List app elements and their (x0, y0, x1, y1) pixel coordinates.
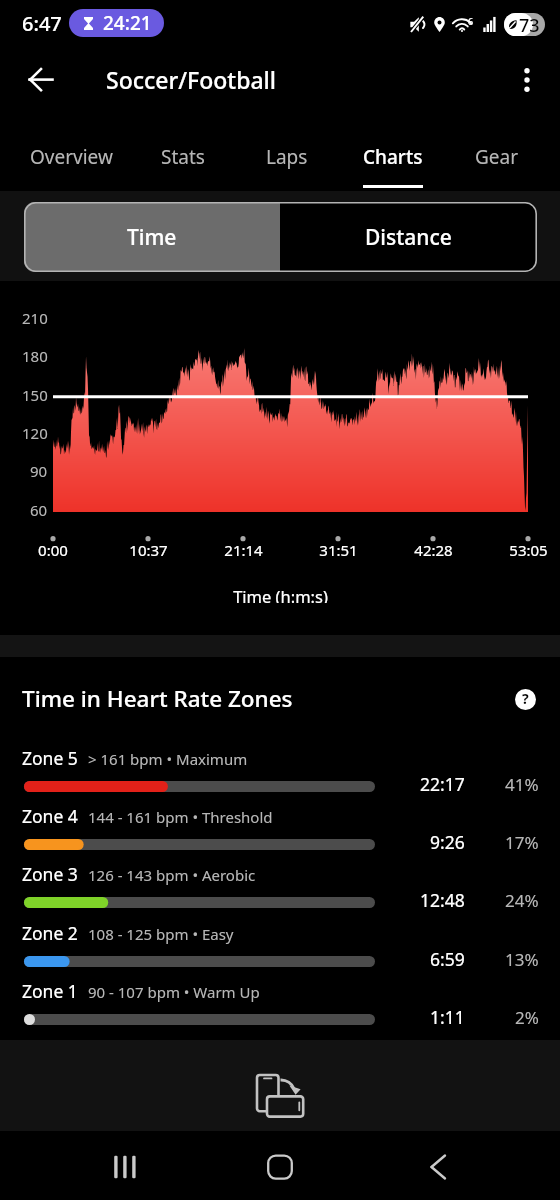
staticText: 17% (505, 831, 539, 851)
staticText: 60 (30, 500, 48, 520)
button[interactable]: Back (414, 1143, 462, 1191)
staticText: Gear (475, 144, 519, 170)
button[interactable]: Zone 1 (0, 978, 560, 1036)
staticText: Stats (161, 144, 205, 170)
button[interactable]: Zone 3 (0, 861, 560, 919)
button[interactable]: Stats (139, 112, 227, 190)
staticText: Zone 3 (22, 862, 78, 886)
staticText: 0:00 (38, 540, 68, 556)
staticText: 42:28 (414, 540, 453, 556)
staticText: Time (127, 223, 177, 252)
button[interactable]: Time (24, 202, 280, 272)
staticText: 144 - 161 bpm • Threshold (88, 807, 273, 827)
staticText: 73 (519, 13, 540, 36)
staticText: 22:17 (420, 772, 465, 793)
staticText: 1:11 (430, 1005, 465, 1026)
staticText: 53:05 (509, 540, 548, 556)
button[interactable]: More options (503, 56, 551, 104)
staticText: Time in Heart Rate Zones (22, 683, 293, 714)
staticText: Zone 1 (22, 979, 78, 1003)
staticText: 6:47 (22, 10, 62, 37)
staticText: 2% (515, 1006, 539, 1026)
staticText: 10:37 (129, 540, 168, 556)
staticText: 41% (505, 773, 539, 793)
button[interactable]: Back (17, 56, 65, 104)
staticText: 12:48 (420, 888, 465, 909)
button[interactable]: Laps (243, 112, 331, 190)
staticText: 210 (22, 308, 48, 328)
staticText: 120 (22, 423, 48, 443)
button[interactable]: Home (256, 1143, 304, 1191)
staticText: ? (522, 689, 529, 708)
button[interactable]: Zone 4 (0, 803, 560, 861)
button[interactable]: Rotate screen (251, 1070, 307, 1126)
staticText: 90 - 107 bpm • Warm Up (88, 982, 260, 1002)
staticText: Distance (365, 223, 452, 252)
staticText: 6 (468, 15, 474, 27)
staticText: Zone 4 (22, 804, 78, 828)
button[interactable]: Distance (280, 202, 537, 272)
staticText: Time (h:m:s) (233, 585, 328, 603)
staticText: 31:51 (319, 540, 358, 556)
staticText: Charts (363, 144, 423, 170)
button[interactable]: Help (511, 685, 539, 713)
staticText: 150 (22, 385, 48, 405)
button[interactable]: Recents (101, 1143, 149, 1191)
staticText: Zone 5 (22, 746, 78, 770)
staticText: 21:14 (224, 540, 263, 556)
staticText: Overview (30, 144, 113, 170)
staticText: 126 - 143 bpm • Aerobic (88, 865, 256, 885)
button[interactable]: Charts (347, 112, 439, 190)
staticText: Laps (266, 144, 308, 170)
staticText: 6:59 (430, 947, 465, 968)
staticText: 180 (22, 346, 48, 366)
staticText: 13% (505, 948, 539, 968)
staticText: > 161 bpm • Maximum (88, 749, 248, 769)
staticText: 90 (30, 461, 48, 481)
staticText: 24% (505, 889, 539, 909)
staticText: Zone 2 (22, 921, 78, 945)
staticText: 24:21 (103, 10, 152, 36)
button[interactable]: Gear (453, 112, 541, 190)
staticText: 108 - 125 bpm • Easy (88, 924, 234, 944)
staticText: 9:26 (430, 830, 465, 851)
staticText: Soccer/Football (106, 64, 276, 95)
button[interactable]: Zone 5 (0, 745, 560, 803)
button[interactable]: Zone 2 (0, 920, 560, 978)
button[interactable]: Overview (17, 112, 125, 190)
